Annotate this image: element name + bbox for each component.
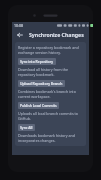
staticText: 10:08 [14, 23, 23, 28]
staticText: Sync into Repository [20, 59, 54, 64]
staticText: Synchronize Changes [29, 31, 84, 38]
staticText: Downloads bookmark history and incorpora… [18, 133, 83, 143]
button[interactable]: Back [15, 30, 24, 39]
staticText: Sync All [20, 125, 33, 130]
staticText: Register a repository bookmark and excha… [18, 45, 83, 55]
button[interactable]: Sync All [18, 124, 35, 131]
staticText: Download all history from the repository… [18, 67, 83, 77]
button[interactable]: Publish Local Commits [18, 102, 59, 109]
button[interactable]: Upload Repository Branch [18, 80, 65, 87]
staticText: Publish Local Commits [20, 103, 57, 108]
staticText: Combines bookmark's branch into current … [18, 89, 83, 99]
staticText: Upload Repository Branch [20, 81, 63, 86]
button[interactable]: Sync into Repository [18, 58, 56, 65]
staticText: Uploads all local branch commits to GitH… [18, 111, 83, 121]
